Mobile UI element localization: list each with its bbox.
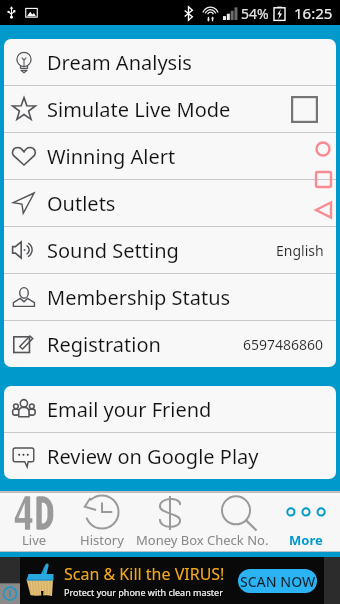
staticText: Money Box [136, 531, 204, 549]
staticText: 16:25 [294, 3, 333, 23]
button[interactable]: Sound Setting [4, 227, 336, 273]
staticText: Email your Friend [47, 396, 212, 423]
button[interactable]: Live [0, 493, 68, 551]
button[interactable]: More [272, 493, 340, 551]
button[interactable]: Membership Status [4, 274, 336, 320]
button[interactable]: Review on Google Play [4, 433, 336, 479]
staticText: Protect your phone with clean master [64, 586, 223, 598]
staticText: Simulate Live Mode [47, 96, 231, 123]
staticText: Dream Analysis [47, 49, 192, 76]
staticText: English [276, 241, 324, 260]
button[interactable]: Toggle [291, 96, 318, 123]
staticText: Live [22, 531, 47, 549]
staticText: More [289, 531, 323, 549]
button[interactable]: SCAN NOW [238, 569, 317, 593]
staticText: Review on Google Play [47, 443, 259, 470]
staticText: Check No. [207, 531, 269, 549]
button[interactable]: Winning Alert [4, 133, 336, 179]
staticText: Outlets [47, 190, 116, 217]
button[interactable]: Check No. [204, 493, 272, 551]
button[interactable]: Outlets [4, 180, 336, 226]
button[interactable]: Money Box [136, 493, 204, 551]
button[interactable]: Registration [4, 321, 336, 367]
staticText: SCAN NOW [240, 572, 316, 591]
staticText: Sound Setting [47, 237, 179, 264]
button[interactable]: Email your Friend [4, 386, 336, 432]
staticText: 6597486860 [243, 335, 324, 354]
button[interactable]: History [68, 493, 136, 551]
staticText: Winning Alert [47, 143, 176, 170]
staticText: Scan & Kill the VIRUS! [64, 563, 225, 585]
staticText: History [80, 531, 124, 549]
staticText: 54% [241, 4, 269, 23]
staticText: Membership Status [47, 284, 231, 311]
button[interactable]: Dream Analysis [4, 39, 336, 85]
button[interactable]: Simulate Live Mode [4, 86, 336, 132]
staticText: Registration [47, 331, 161, 358]
